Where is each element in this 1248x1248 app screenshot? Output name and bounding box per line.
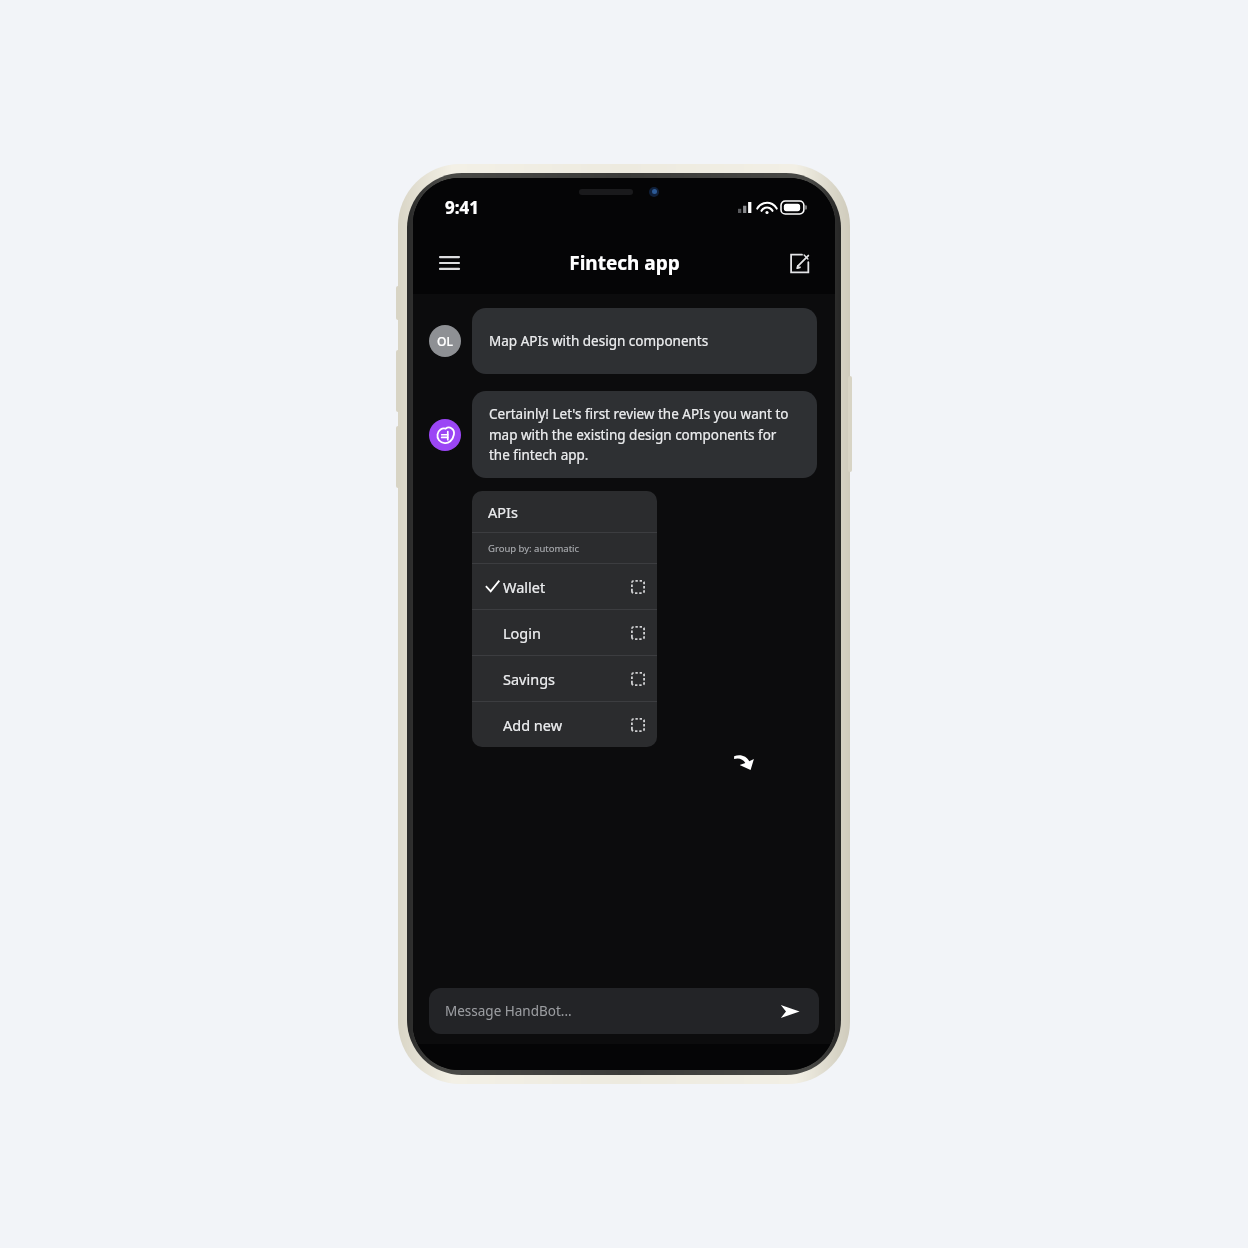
staticText: 9:41 xyxy=(445,196,479,219)
button[interactable]: Login xyxy=(472,610,657,655)
staticText: Add new xyxy=(503,715,631,735)
button[interactable]: Wallet xyxy=(472,564,657,609)
button[interactable]: Compose new message xyxy=(777,241,821,285)
button[interactable]: Add new xyxy=(472,702,657,747)
staticText: Map APIs with design components xyxy=(489,332,709,350)
button[interactable]: Map APIs with design components xyxy=(472,308,817,374)
staticText: Login xyxy=(503,623,631,643)
button[interactable]: Send xyxy=(777,998,803,1024)
staticText: Savings xyxy=(503,669,631,689)
button[interactable]: Message HandBot... xyxy=(429,988,819,1034)
button[interactable]: Menu xyxy=(427,241,471,285)
staticText: OL xyxy=(437,333,453,349)
staticText: Certainly! Let's first review the APIs y… xyxy=(489,405,800,464)
button[interactable]: Savings xyxy=(472,656,657,701)
staticText: APIs xyxy=(488,502,518,522)
staticText: Message HandBot... xyxy=(445,1002,777,1020)
staticText: Wallet xyxy=(503,577,631,597)
button[interactable]: Certainly! Let's first review the APIs y… xyxy=(472,391,817,478)
staticText: Group by: automatic xyxy=(488,542,580,555)
staticText: Fintech app xyxy=(569,250,680,276)
